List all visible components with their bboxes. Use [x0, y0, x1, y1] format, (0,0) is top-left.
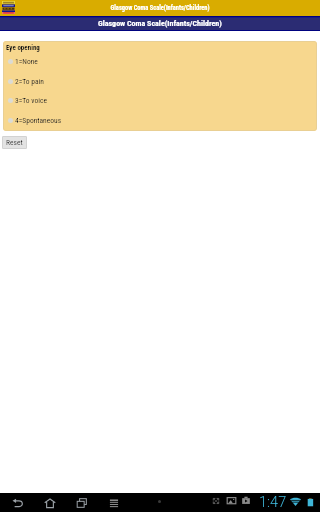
button[interactable]: 1=None [3, 51, 317, 71]
other: Battery [307, 498, 314, 507]
staticText: 1:47 [259, 494, 287, 511]
staticText: 2=To pain [15, 77, 44, 86]
button[interactable]: Back [10, 493, 26, 512]
other: Wi-Fi [290, 498, 301, 506]
button[interactable]: Home [42, 493, 58, 512]
button[interactable]: Expand screen [212, 497, 220, 505]
staticText: Glasgow Coma Scale(Infants/Children) [0, 4, 320, 12]
button[interactable]: 2=To pain [3, 71, 317, 91]
button[interactable]: Menu [106, 493, 122, 512]
staticText: 4=Spontaneous [15, 116, 62, 125]
staticText: Glasgow Coma Scale(Infants/Children) [98, 19, 222, 28]
staticText: 3=To voice [15, 96, 47, 105]
button[interactable]: Recent apps [74, 493, 90, 512]
button[interactable]: Reset [2, 136, 27, 149]
staticText: Reset [6, 138, 23, 147]
button[interactable]: Screen recorder [242, 496, 250, 505]
button[interactable]: Screenshot gallery [227, 496, 236, 505]
button[interactable]: App icon [2, 1, 15, 14]
staticText: Eye opening [6, 44, 40, 52]
staticText: 1=None [15, 57, 38, 66]
button[interactable]: 3=To voice [3, 90, 317, 110]
button[interactable]: 4=Spontaneous [3, 110, 317, 130]
